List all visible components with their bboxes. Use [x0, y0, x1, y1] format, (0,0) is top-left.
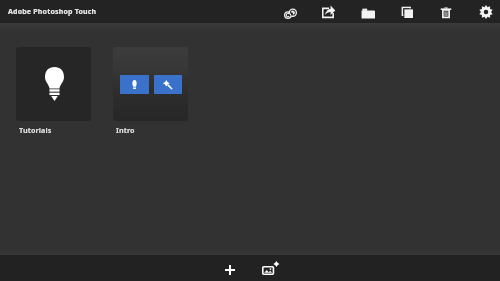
- button[interactable]: New project: [216, 255, 243, 281]
- button[interactable]: Creative Cloud: [274, 0, 306, 23]
- button[interactable]: Folder: [352, 0, 384, 23]
- button[interactable]: Duplicate: [391, 0, 423, 23]
- button[interactable]: Tutorials: [16, 47, 91, 135]
- button[interactable]: Delete: [430, 0, 462, 23]
- staticText: Intro: [116, 125, 135, 135]
- button[interactable]: Settings: [470, 0, 500, 23]
- button[interactable]: Share: [312, 0, 344, 23]
- staticText: Tutorials: [19, 125, 52, 135]
- button[interactable]: Intro: [113, 47, 188, 135]
- button[interactable]: Add image from gallery: [256, 255, 283, 281]
- staticText: Adobe Photoshop Touch: [8, 7, 97, 17]
